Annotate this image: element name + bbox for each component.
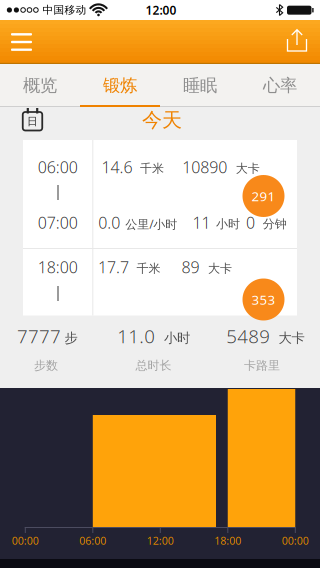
staticText: 大卡 xyxy=(208,261,232,276)
staticText: 步数 xyxy=(34,358,58,373)
button[interactable]: 心率 xyxy=(240,64,320,107)
staticText: 11.0 xyxy=(117,324,155,348)
button[interactable]: Share xyxy=(276,18,320,62)
staticText: 锻炼 xyxy=(103,75,137,96)
button[interactable]: Calendar xyxy=(15,103,49,136)
staticText: 06:00 xyxy=(79,533,106,548)
staticText: 分钟 xyxy=(263,217,287,231)
staticText: 总时长 xyxy=(135,358,171,373)
staticText: 公里/小时 xyxy=(125,216,177,232)
staticText: 0.0 xyxy=(98,212,120,233)
staticText: 89 xyxy=(181,256,199,278)
staticText: 11 xyxy=(192,212,210,233)
staticText: 12:00 xyxy=(147,533,174,548)
staticText: 大卡 xyxy=(236,161,260,176)
staticText: 00:00 xyxy=(282,533,309,548)
staticText: 睡眠 xyxy=(183,75,217,96)
staticText: 日 xyxy=(27,115,38,128)
staticText: 中国移动 xyxy=(42,3,86,16)
staticText: 17.7 xyxy=(98,256,129,278)
staticText: 18:00 xyxy=(38,256,78,278)
staticText: 353 xyxy=(251,291,275,308)
button[interactable]: 睡眠 xyxy=(160,64,240,107)
staticText: 今天 xyxy=(142,108,182,132)
staticText: 千米 xyxy=(140,161,164,176)
staticText: 卡路里 xyxy=(244,358,280,373)
staticText: 07:00 xyxy=(38,212,78,233)
button[interactable]: Menu xyxy=(0,20,43,64)
button[interactable]: 概览 xyxy=(0,64,80,107)
staticText: 291 xyxy=(251,187,275,205)
staticText: 12:00 xyxy=(145,2,176,18)
staticText: 小时 xyxy=(216,217,240,231)
staticText: 18:00 xyxy=(214,533,241,548)
staticText: 心率 xyxy=(263,75,297,96)
staticText: 概览 xyxy=(23,75,57,96)
staticText: 0 xyxy=(246,212,255,233)
staticText: 5489 xyxy=(226,324,270,348)
button[interactable]: 锻炼 xyxy=(80,64,160,107)
staticText: 7777 xyxy=(17,324,61,348)
staticText: 千米 xyxy=(136,261,160,276)
staticText: 00:00 xyxy=(12,533,39,548)
staticText: 10890 xyxy=(182,156,227,178)
staticText: 06:00 xyxy=(38,156,78,178)
staticText: 大卡 xyxy=(278,330,304,346)
staticText: 14.6 xyxy=(101,156,132,178)
staticText: 步 xyxy=(64,330,77,346)
staticText: 小时 xyxy=(164,330,190,346)
